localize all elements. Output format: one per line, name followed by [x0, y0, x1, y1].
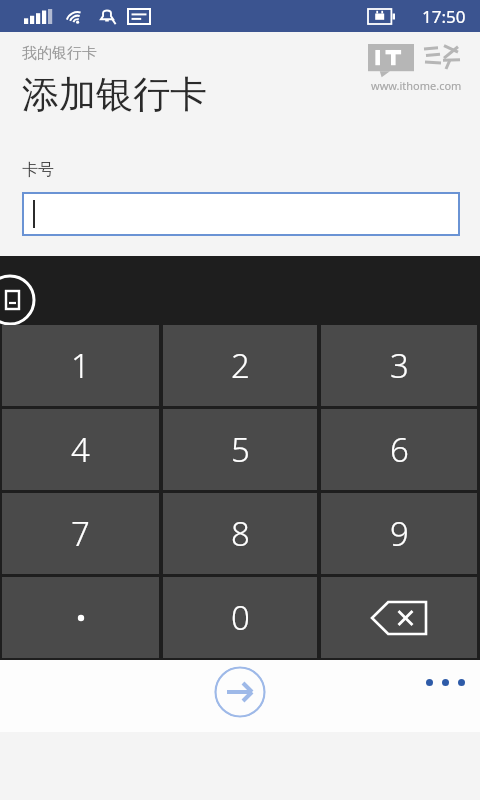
button[interactable]	[22, 192, 460, 236]
staticText: 3	[390, 343, 409, 388]
staticText: 6	[390, 427, 409, 472]
button[interactable]: Submit	[214, 666, 266, 718]
staticText: 我的银行卡	[22, 44, 97, 63]
button[interactable]: 0	[163, 577, 317, 658]
staticText: 8	[231, 511, 250, 556]
button[interactable]: 3	[321, 325, 477, 406]
button[interactable]: 2	[163, 325, 317, 406]
button[interactable]: 8	[163, 493, 317, 574]
staticText: 5	[231, 427, 250, 472]
button[interactable]: Backspace	[321, 577, 477, 658]
button[interactable]: 5	[163, 409, 317, 490]
button[interactable]: More options	[416, 666, 474, 698]
staticText: 添加银行卡	[22, 71, 207, 118]
button[interactable]: Input mode	[0, 274, 36, 326]
button[interactable]: 7	[2, 493, 159, 574]
staticText: 2	[231, 343, 250, 388]
button[interactable]: 1	[2, 325, 159, 406]
staticText: 0	[231, 595, 250, 640]
button[interactable]: 4	[2, 409, 159, 490]
button[interactable]: 6	[321, 409, 477, 490]
staticText: 9	[390, 511, 409, 556]
button[interactable]	[2, 577, 159, 658]
staticText: 卡号	[22, 160, 54, 180]
staticText: 7	[71, 511, 90, 556]
staticText: www.ithome.com	[371, 78, 462, 93]
staticText: 17:50	[422, 5, 466, 28]
staticText: 1	[71, 343, 90, 388]
button[interactable]: 9	[321, 493, 477, 574]
staticText: 4	[71, 427, 90, 472]
